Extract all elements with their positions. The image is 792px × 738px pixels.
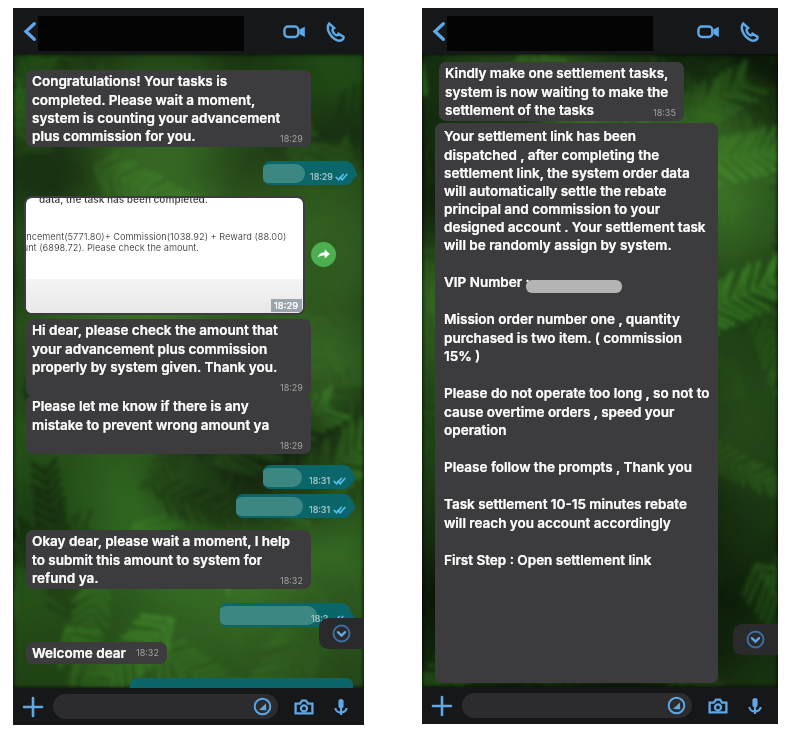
button[interactable]: Sticker	[254, 698, 271, 715]
staticText: 18:29	[280, 382, 303, 393]
staticText: 18:31	[309, 504, 331, 515]
staticText: data, the task has been completed.	[39, 198, 208, 205]
button[interactable]: Sticker	[53, 694, 278, 719]
staticText: 18:29	[310, 171, 333, 182]
button[interactable]: Voice call	[731, 13, 767, 49]
button[interactable]: Please let me know if there is any mista…	[26, 395, 311, 454]
staticText: 18:29	[280, 133, 303, 144]
button[interactable]: Scroll to bottom	[319, 618, 364, 649]
staticText: Please do not operate too long , so not …	[444, 385, 711, 438]
button[interactable]: Kindly make one settlement tasks, system…	[439, 62, 684, 121]
button[interactable]: Okay dear, please wait a moment, I help …	[26, 530, 311, 589]
button[interactable]: Back	[422, 14, 456, 48]
button[interactable]: Hi dear, please check the amount that yo…	[26, 319, 311, 396]
button[interactable]: Back	[13, 14, 47, 48]
button[interactable]: Video call	[690, 13, 726, 49]
button[interactable]: Attach	[422, 687, 462, 724]
button[interactable]: Your settlement link has been dispatched…	[435, 123, 718, 683]
staticText: 18:29	[280, 440, 303, 451]
staticText: VIP Number :	[444, 274, 534, 290]
button[interactable]: Video call	[276, 13, 312, 49]
button[interactable]: Camera	[703, 691, 733, 721]
button[interactable]: Voice message	[740, 691, 770, 721]
button[interactable]: 18:3	[220, 603, 349, 627]
button[interactable]: Attach	[13, 688, 53, 725]
staticText: Kindly make one settlement tasks, system…	[445, 65, 676, 118]
button[interactable]: Scroll to bottom	[733, 624, 778, 655]
button[interactable]	[130, 678, 353, 688]
staticText: 18:29	[274, 300, 299, 311]
staticText: Okay dear, please wait a moment, I help …	[32, 533, 303, 586]
staticText: 18:32	[136, 647, 159, 658]
staticText: Task settlement 10-15 minutes rebate wil…	[444, 496, 711, 531]
staticText: 18:35	[653, 107, 676, 118]
button[interactable]: 18:31	[236, 494, 351, 518]
button[interactable]: Sticker	[462, 693, 692, 718]
staticText: Mission order number one , quantity purc…	[444, 311, 711, 364]
button[interactable]: 18:29	[263, 161, 353, 185]
staticText: Hi dear, please check the amount that yo…	[32, 322, 303, 393]
staticText: First Step : Open settlement link	[444, 552, 652, 568]
button[interactable]: 18:31	[263, 465, 351, 489]
staticText: Advancement(5771.80)+ Commission(1038.92…	[26, 231, 287, 242]
staticText: Congratulations! Your tasks is completed…	[32, 73, 303, 144]
staticText: amount (6898.72). Please check the amoun…	[26, 242, 199, 253]
button[interactable]: Congratulations! Your tasks is completed…	[26, 70, 311, 147]
button[interactable]: Forward	[311, 242, 336, 267]
staticText: Please let me know if there is any mista…	[32, 398, 303, 451]
button[interactable]: Welcome dear	[26, 642, 167, 664]
button[interactable]: Voice message	[326, 692, 356, 722]
staticText: 18:3	[311, 613, 329, 624]
staticText: 18:31	[309, 475, 331, 486]
button[interactable]: data, the task has been completed.	[24, 196, 305, 315]
staticText: Your settlement link has been dispatched…	[444, 128, 711, 253]
button[interactable]: Camera	[289, 692, 319, 722]
staticText: Welcome dear	[32, 645, 126, 661]
staticText: Please follow the prompts , Thank you	[444, 459, 692, 475]
button[interactable]: Voice call	[317, 13, 353, 49]
staticText: 18:32	[280, 575, 303, 586]
button[interactable]: Sticker	[668, 697, 685, 714]
